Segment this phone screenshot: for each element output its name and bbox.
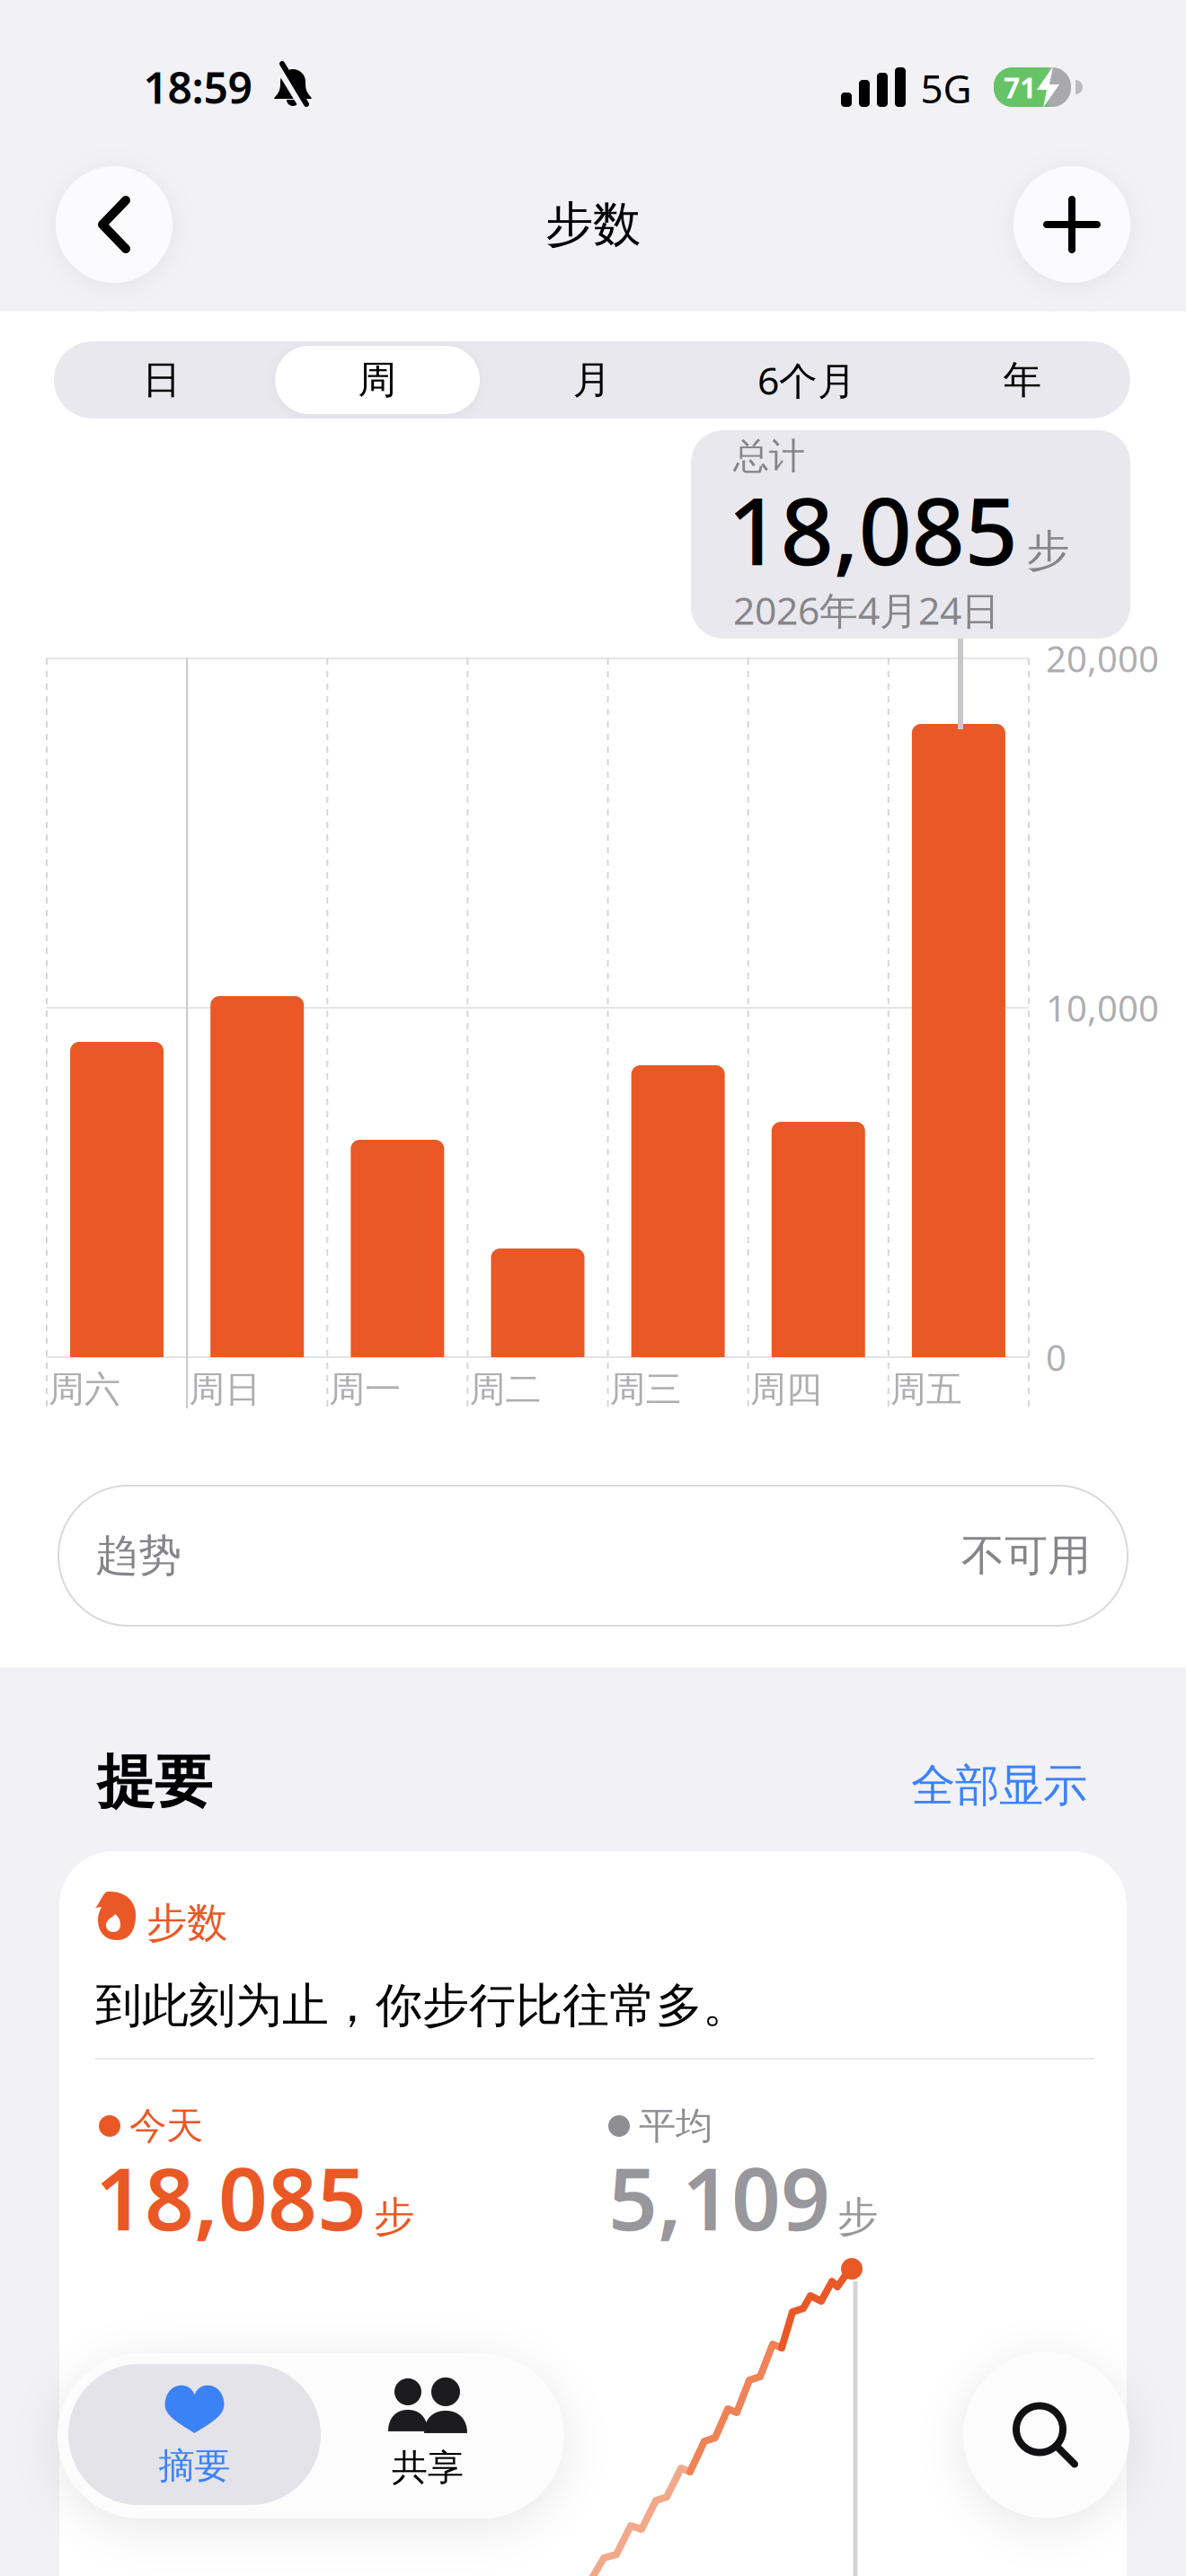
staticText: 20,000 <box>1046 634 1159 682</box>
staticText: 全部显示 <box>911 1758 1087 1813</box>
button[interactable]: 全部显示 <box>728 1758 1087 1813</box>
staticText: 18,085 <box>95 2140 367 2254</box>
staticText: 不可用 <box>961 1529 1091 1582</box>
button[interactable]: Back <box>56 166 173 283</box>
staticText: 5G <box>920 62 972 114</box>
staticText: 到此刻为止，你步行比往常多。 <box>95 1977 749 2034</box>
staticText: 18:59 <box>143 58 252 116</box>
staticText: 10,000 <box>1046 984 1159 1032</box>
staticText: 6个月 <box>757 355 856 405</box>
staticText: 2026年4月24日 <box>733 584 1000 635</box>
staticText: 周二 <box>469 1367 541 1412</box>
staticText: 今天 <box>129 2103 203 2149</box>
staticText: 周日 <box>189 1367 261 1412</box>
staticText: 18,085 <box>727 467 1018 591</box>
staticText: 周一 <box>329 1367 401 1412</box>
staticText: 周四 <box>750 1367 822 1412</box>
button[interactable]: 趋势 <box>58 1485 1128 1627</box>
staticText: 摘要 <box>159 2444 230 2488</box>
staticText: 71 <box>1004 68 1036 106</box>
staticText: 步 <box>374 2192 414 2242</box>
staticText: 总计 <box>733 434 805 478</box>
staticText: 步数 <box>146 1898 227 1948</box>
button[interactable]: Search <box>963 2352 1129 2518</box>
staticText: 年 <box>1003 356 1042 403</box>
button[interactable]: 周 <box>275 341 480 419</box>
staticText: 趋势 <box>95 1529 181 1582</box>
staticText: 步数 <box>545 195 641 254</box>
staticText: 日 <box>142 356 181 403</box>
staticText: 共享 <box>392 2446 464 2490</box>
button[interactable]: 日 <box>58 341 265 419</box>
button[interactable]: Add <box>1013 166 1130 283</box>
button[interactable]: 月 <box>489 341 695 419</box>
staticText: 步 <box>837 2192 878 2242</box>
staticText: 周六 <box>49 1367 120 1412</box>
button[interactable] <box>59 1851 1127 2576</box>
staticText: 周三 <box>610 1367 682 1412</box>
button[interactable]: 年 <box>919 341 1126 419</box>
button[interactable]: 共享 <box>320 2364 535 2505</box>
staticText: 5,109 <box>608 2140 830 2254</box>
staticText: 月 <box>573 356 611 403</box>
button[interactable]: 摘要 <box>68 2364 321 2505</box>
staticText: 平均 <box>639 2103 712 2149</box>
staticText: 步 <box>1027 524 1070 577</box>
staticText: 周五 <box>890 1367 962 1412</box>
staticText: 提要 <box>97 1747 212 1817</box>
staticText: 周 <box>358 356 397 403</box>
button[interactable]: 6个月 <box>704 341 910 419</box>
staticText: 0 <box>1046 1333 1067 1381</box>
